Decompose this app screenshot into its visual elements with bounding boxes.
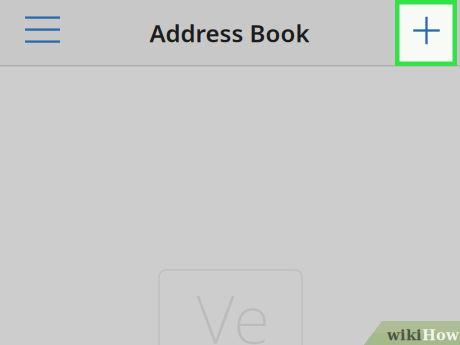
staticText: Address Book: [149, 17, 309, 49]
button[interactable]: Add contact: [395, 0, 457, 66]
button[interactable]: Menu: [12, 3, 72, 57]
staticText: How: [422, 326, 459, 344]
staticText: wiki: [387, 326, 422, 344]
staticText: Ve: [196, 274, 269, 345]
